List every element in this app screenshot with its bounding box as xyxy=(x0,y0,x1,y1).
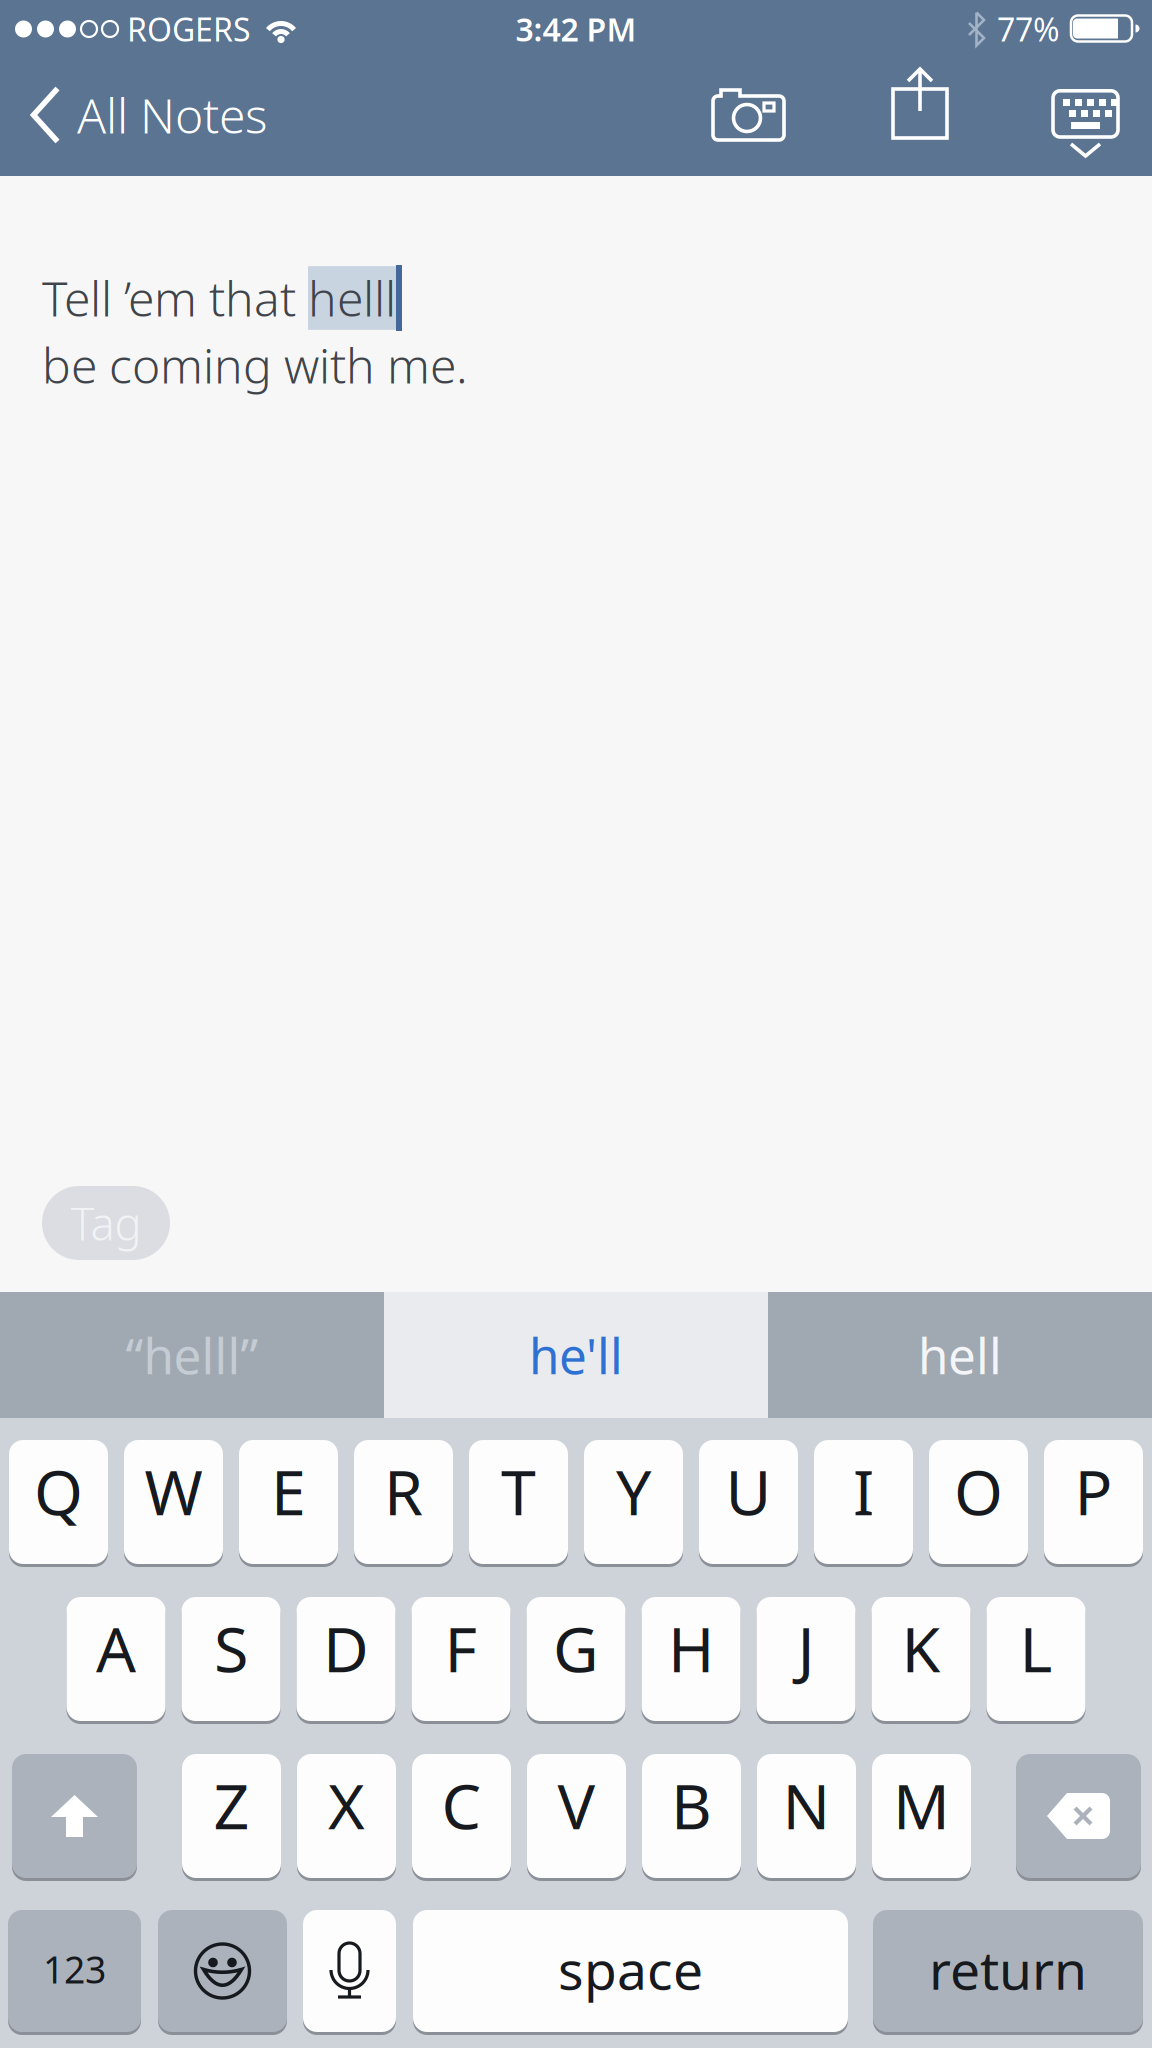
button[interactable]: K xyxy=(871,1597,970,1721)
button[interactable]: M xyxy=(872,1754,971,1878)
button[interactable]: Camera xyxy=(709,88,789,142)
staticText: E xyxy=(271,1449,306,1533)
staticText: D xyxy=(323,1606,369,1690)
staticText: Tell ’em that xyxy=(42,266,308,330)
button[interactable]: W xyxy=(124,1440,223,1564)
staticText: All Notes xyxy=(77,83,268,147)
button[interactable]: D xyxy=(296,1597,395,1721)
button[interactable]: T xyxy=(469,1440,568,1564)
button[interactable]: “helll” xyxy=(0,1292,384,1418)
staticText: F xyxy=(444,1606,477,1690)
button[interactable]: V xyxy=(527,1754,626,1878)
button[interactable]: L xyxy=(986,1597,1085,1721)
staticText: K xyxy=(901,1606,940,1690)
staticText: G xyxy=(553,1606,599,1690)
staticText: O xyxy=(954,1449,1003,1533)
staticText: be coming with me. xyxy=(42,333,468,397)
staticText: L xyxy=(1019,1606,1052,1690)
staticText: hell xyxy=(918,1322,1002,1388)
staticText: W xyxy=(144,1449,202,1533)
button[interactable]: Shift xyxy=(12,1754,137,1878)
button[interactable]: Q xyxy=(9,1440,108,1564)
staticText: 77% xyxy=(997,8,1060,50)
button[interactable]: S xyxy=(181,1597,280,1721)
staticText: ROGERS xyxy=(127,8,251,50)
staticText: J xyxy=(797,1606,814,1690)
button[interactable]: space xyxy=(413,1910,848,2032)
staticText: he'll xyxy=(529,1322,623,1388)
button[interactable]: Y xyxy=(584,1440,683,1564)
button[interactable]: U xyxy=(699,1440,798,1564)
staticText: A xyxy=(96,1606,136,1690)
staticText: N xyxy=(782,1763,830,1847)
staticText: V xyxy=(557,1763,595,1847)
button[interactable]: hell xyxy=(768,1292,1152,1418)
button[interactable]: Share xyxy=(789,79,951,151)
button[interactable]: Emoji xyxy=(158,1910,287,2032)
button[interactable]: G xyxy=(526,1597,625,1721)
button[interactable]: N xyxy=(757,1754,856,1878)
button[interactable]: return xyxy=(873,1910,1143,2032)
staticText: 3:42 PM xyxy=(515,8,636,50)
staticText: M xyxy=(893,1763,950,1847)
staticText: B xyxy=(671,1763,712,1847)
staticText: Y xyxy=(616,1449,651,1533)
button[interactable]: A xyxy=(66,1597,165,1721)
staticText: T xyxy=(501,1449,536,1533)
staticText: X xyxy=(328,1763,365,1847)
staticText: S xyxy=(214,1606,248,1690)
button[interactable]: R xyxy=(354,1440,453,1564)
button[interactable]: Z xyxy=(182,1754,281,1878)
button[interactable]: P xyxy=(1044,1440,1143,1564)
staticText: helll xyxy=(308,266,396,330)
staticText: C xyxy=(441,1763,481,1847)
button[interactable]: he'll xyxy=(384,1292,768,1418)
button[interactable]: Delete xyxy=(1016,1754,1141,1878)
button[interactable]: E xyxy=(239,1440,338,1564)
button[interactable]: All Notes xyxy=(0,83,268,147)
button[interactable]: X xyxy=(297,1754,396,1878)
staticText: H xyxy=(668,1606,714,1690)
button[interactable]: F xyxy=(411,1597,510,1721)
staticText: “helll” xyxy=(125,1322,258,1388)
button[interactable]: 123 xyxy=(8,1910,141,2032)
button[interactable]: Dismiss Keyboard xyxy=(951,80,1152,150)
button[interactable]: I xyxy=(814,1440,913,1564)
staticText: 123 xyxy=(43,1944,106,1994)
staticText: U xyxy=(725,1449,771,1533)
button[interactable]: Dictate xyxy=(303,1910,396,2032)
staticText: space xyxy=(558,1934,703,2004)
button[interactable]: J xyxy=(756,1597,855,1721)
staticText: R xyxy=(384,1449,423,1533)
staticText: Z xyxy=(213,1763,249,1847)
staticText: P xyxy=(1074,1449,1112,1533)
button[interactable]: C xyxy=(412,1754,511,1878)
button[interactable]: B xyxy=(642,1754,741,1878)
button[interactable]: Tag xyxy=(42,1186,170,1260)
button[interactable]: O xyxy=(929,1440,1028,1564)
staticText: I xyxy=(853,1449,874,1533)
staticText: Tag xyxy=(70,1193,141,1253)
staticText: Q xyxy=(34,1449,83,1533)
button[interactable]: H xyxy=(641,1597,740,1721)
staticText: return xyxy=(929,1934,1087,2004)
